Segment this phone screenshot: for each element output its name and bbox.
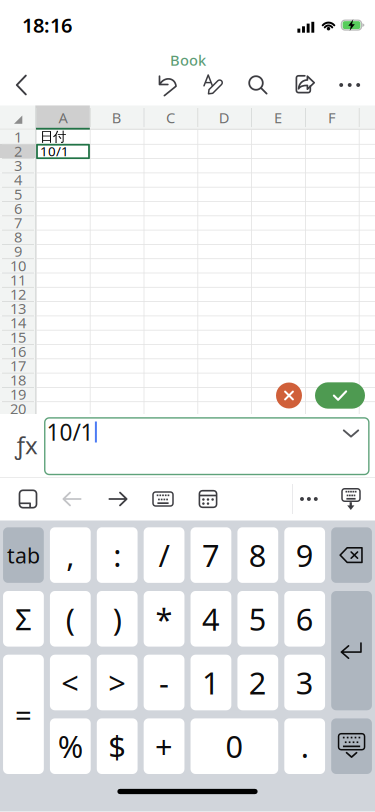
button[interactable]: 1: [187, 651, 234, 714]
button[interactable]: Format: [190, 63, 234, 107]
button[interactable]: *: [141, 587, 187, 650]
staticText: 1: [14, 127, 22, 146]
button[interactable]: -: [141, 651, 187, 714]
staticText: Book: [170, 50, 206, 70]
button[interactable]: 6: [281, 587, 328, 650]
button[interactable]: =: [0, 651, 47, 777]
staticText: F: [328, 108, 336, 127]
staticText: $: [108, 726, 126, 766]
button[interactable]: Accept: [315, 380, 365, 410]
staticText: 11: [10, 270, 26, 289]
staticText: =: [15, 695, 32, 734]
button[interactable]: 3: [281, 651, 328, 714]
button[interactable]: +: [141, 715, 187, 777]
button[interactable]: More: [328, 63, 372, 107]
button[interactable]: Undo: [144, 63, 188, 107]
button[interactable]: :: [94, 524, 141, 586]
staticText: 4: [14, 170, 22, 189]
staticText: 3: [14, 156, 22, 175]
button[interactable]: 8: [234, 524, 281, 586]
staticText: %: [58, 726, 83, 766]
staticText: 12: [10, 284, 26, 304]
button[interactable]: ,: [47, 524, 94, 586]
button[interactable]: Delete: [328, 524, 375, 586]
staticText: >: [108, 662, 126, 703]
button[interactable]: Date: [186, 477, 230, 521]
staticText: tab: [7, 541, 40, 569]
button[interactable]: 0: [187, 715, 281, 777]
button[interactable]: $: [94, 715, 141, 777]
staticText: Σ: [15, 599, 32, 638]
button[interactable]: Search: [236, 63, 280, 107]
staticText: 2: [249, 662, 267, 703]
button[interactable]: %: [47, 715, 94, 777]
staticText: 10: [10, 256, 26, 275]
staticText: 0: [225, 726, 243, 766]
button[interactable]: Return: [328, 587, 375, 714]
staticText: 6: [14, 198, 22, 218]
button[interactable]: 2: [234, 651, 281, 714]
button[interactable]: Hide keyboard: [329, 477, 373, 521]
staticText: 2: [14, 141, 22, 161]
button[interactable]: (: [47, 587, 94, 650]
staticText: <: [61, 662, 79, 703]
staticText: D: [219, 108, 230, 127]
staticText: -: [159, 662, 169, 703]
staticText: A: [58, 108, 67, 127]
staticText: .: [301, 726, 309, 766]
button[interactable]: 5: [234, 587, 281, 650]
staticText: B: [112, 108, 122, 127]
button[interactable]: Previous cell: [50, 477, 94, 521]
button[interactable]: <: [47, 651, 94, 714]
staticText: 3: [296, 662, 314, 703]
staticText: 7: [202, 535, 220, 575]
button[interactable]: Cell: [6, 477, 50, 521]
staticText: 7: [14, 213, 22, 232]
button[interactable]: /: [141, 524, 187, 586]
button[interactable]: Back: [0, 63, 44, 107]
staticText: /: [159, 535, 170, 575]
staticText: 5: [14, 184, 22, 204]
staticText: 10/1: [46, 417, 93, 447]
button[interactable]: 9: [281, 524, 328, 586]
staticText: C: [166, 108, 175, 127]
button[interactable]: >: [94, 651, 141, 714]
staticText: 6: [296, 598, 314, 639]
button[interactable]: 7: [187, 524, 234, 586]
button[interactable]: tab: [0, 524, 47, 586]
button[interactable]: Keyboard: [141, 477, 185, 521]
staticText: 18:16: [22, 12, 72, 38]
button[interactable]: Hide keyboard: [328, 715, 375, 777]
staticText: 19: [10, 384, 26, 404]
staticText: 8: [249, 535, 267, 575]
button[interactable]: More options: [287, 477, 331, 521]
staticText: 9: [14, 241, 22, 261]
button[interactable]: Σ: [0, 587, 47, 650]
staticText: 15: [10, 327, 26, 347]
staticText: 5: [249, 598, 267, 639]
button[interactable]: 4: [187, 587, 234, 650]
staticText: 17: [10, 356, 26, 375]
staticText: ƒx: [15, 429, 38, 461]
staticText: ,: [66, 535, 74, 575]
staticText: 20: [10, 399, 26, 418]
button[interactable]: ): [94, 587, 141, 650]
staticText: 9: [296, 535, 314, 575]
button[interactable]: Cancel: [274, 380, 304, 410]
staticText: +: [155, 726, 173, 766]
staticText: 1: [202, 662, 220, 703]
staticText: E: [274, 108, 282, 127]
button[interactable]: Next cell: [96, 477, 140, 521]
button[interactable]: Share: [282, 63, 326, 107]
staticText: 日付: [40, 129, 66, 145]
staticText: *: [156, 598, 173, 639]
button[interactable]: .: [281, 715, 328, 777]
staticText: 4: [202, 598, 220, 639]
staticText: (: [66, 598, 75, 639]
staticText: 10/1: [40, 142, 69, 160]
staticText: 13: [10, 299, 26, 318]
staticText: 8: [14, 227, 22, 247]
staticText: 14: [10, 313, 26, 332]
button[interactable]: Expand formula bar: [331, 415, 371, 451]
staticText: 16: [10, 341, 26, 361]
